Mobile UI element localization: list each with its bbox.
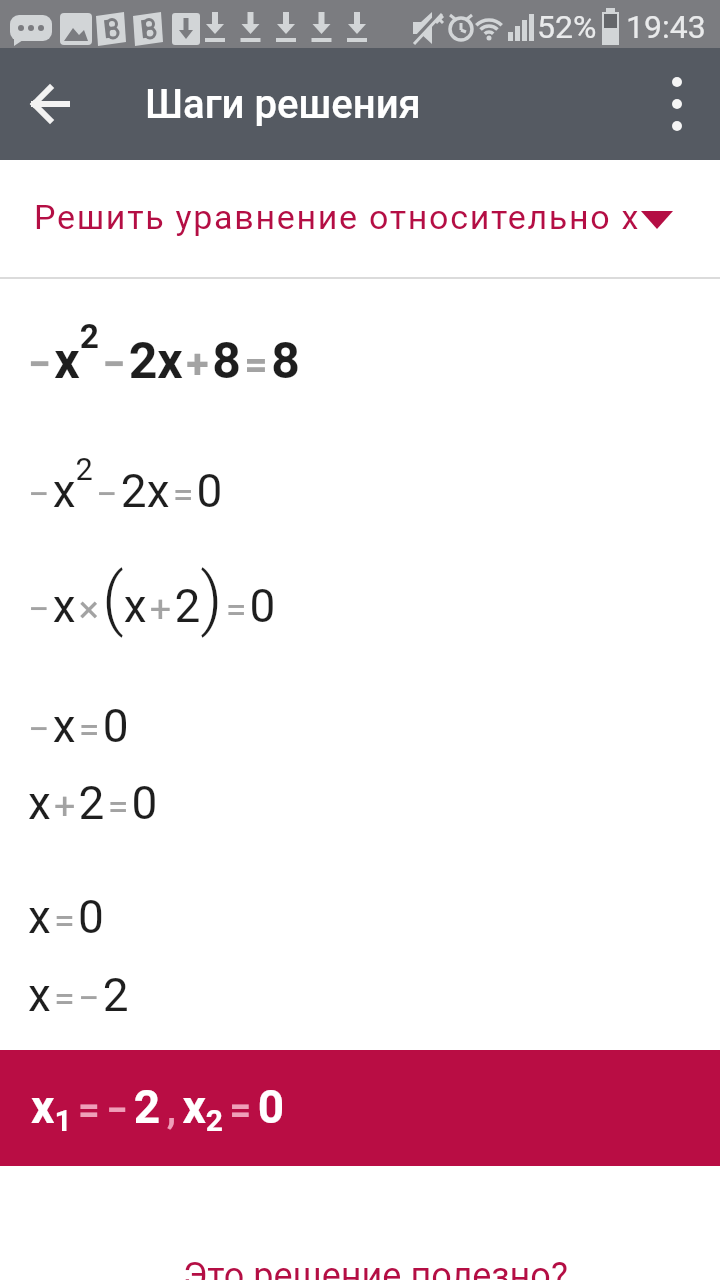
staticText: − x2 − 2x + 8 = 8	[28, 317, 300, 390]
staticText: Это решение полезно?	[183, 1255, 568, 1280]
button[interactable]	[650, 76, 706, 132]
staticText: − x × (x + 2) = 0	[28, 559, 276, 639]
staticText: 52%	[537, 8, 597, 46]
staticText: − x = 0	[28, 699, 129, 753]
staticText: Шаги решения	[145, 81, 421, 128]
staticText: 19:43	[626, 8, 706, 46]
staticText: x = − 2	[28, 968, 129, 1022]
staticText: Решить уравнение относительно x	[34, 197, 641, 237]
staticText: − x2 − 2x = 0	[28, 451, 223, 518]
staticText: x + 2 = 0	[28, 776, 158, 830]
button[interactable]	[18, 72, 82, 136]
button[interactable]: x1 = − 2 , x2 = 0	[0, 1050, 720, 1166]
staticText: x = 0	[28, 890, 104, 944]
staticText: x1 = − 2 , x2 = 0	[31, 1080, 285, 1138]
button[interactable]: Решить уравнение относительно x	[0, 160, 720, 278]
